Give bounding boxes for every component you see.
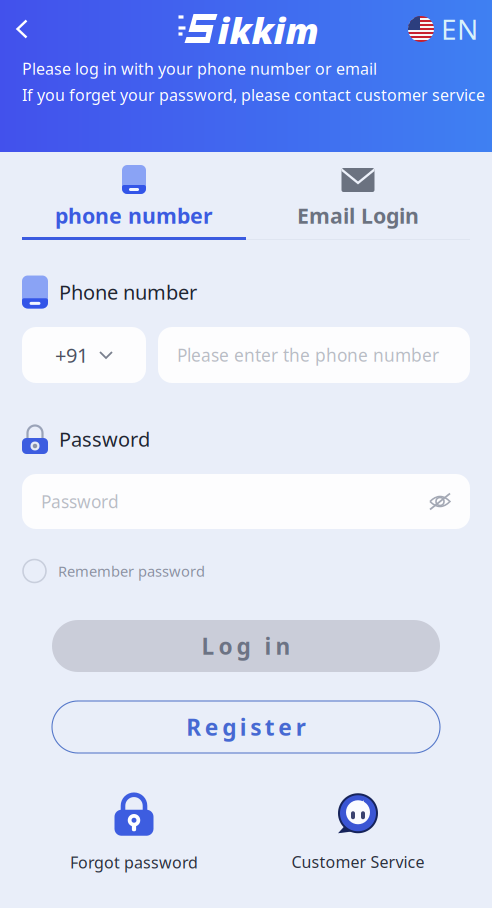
button[interactable]: Back [0,7,44,51]
staticText: Please enter the phone number [177,343,439,366]
button[interactable]: +91 [22,327,146,383]
button[interactable]: Remember password [23,558,205,584]
button[interactable]: Register [52,701,440,753]
button[interactable]: Show password [429,490,451,512]
staticText: Please log in with your phone number or … [22,58,377,79]
button[interactable]: Customer Service [246,793,470,872]
staticText: Phone number [59,279,197,305]
staticText: phone number [55,201,213,230]
staticText: Email Login [297,201,419,230]
button[interactable]: Forgot password [22,793,246,873]
button[interactable]: Email Login [246,152,470,240]
staticText: Password [41,490,119,513]
button[interactable]: EN [408,10,492,48]
button[interactable]: Log in [52,620,440,672]
staticText: EN [441,10,478,48]
staticText: +91 [55,342,88,368]
staticText: ikkim [217,6,318,54]
staticText: Password [59,426,150,452]
staticText: Log in [201,631,290,661]
staticText: Remember password [58,561,205,581]
staticText: Register [186,712,306,742]
staticText: If you forget your password, please cont… [22,84,485,105]
staticText: Customer Service [291,851,424,872]
staticText: Forgot password [70,852,198,873]
button[interactable]: phone number [22,152,246,240]
